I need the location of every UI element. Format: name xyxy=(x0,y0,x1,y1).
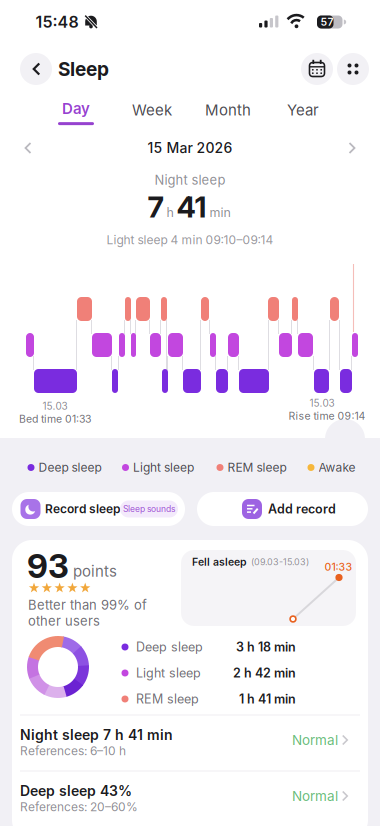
staticText: REM sleep xyxy=(227,461,286,474)
staticText: Record sleep xyxy=(45,502,120,516)
button[interactable]: Record sleep xyxy=(12,492,185,526)
button[interactable]: Deep sleep 43% xyxy=(16,771,364,826)
staticText: 01:33 xyxy=(324,561,352,573)
staticText: Month xyxy=(205,101,251,119)
staticText: 15 Mar 2026 xyxy=(147,140,232,156)
staticText: Rise time 09:14 xyxy=(288,410,365,422)
staticText: Sleep sounds xyxy=(123,504,175,514)
button[interactable]: Calendar xyxy=(301,53,333,85)
staticText: 57 xyxy=(320,16,333,28)
staticText: Light sleep 4 min 09:10–09:14 xyxy=(106,233,273,247)
staticText: 93 xyxy=(27,547,69,585)
staticText: Night sleep xyxy=(154,172,225,187)
button[interactable]: Week xyxy=(132,101,172,119)
staticText: 7 xyxy=(147,190,163,224)
staticText: Awake xyxy=(318,461,355,474)
button[interactable]: Next day xyxy=(338,134,366,162)
staticText: Light sleep xyxy=(136,666,201,680)
staticText: min xyxy=(209,205,230,220)
staticText: Night sleep 7 h 41 min xyxy=(20,727,173,743)
staticText: Normal xyxy=(292,788,338,804)
staticText: 2 h 42 min xyxy=(233,666,296,680)
staticText: 15.03 xyxy=(309,397,334,409)
staticText: 3 h 18 min xyxy=(236,640,296,654)
button[interactable]: Add record xyxy=(197,492,368,526)
staticText: Sleep xyxy=(58,58,109,80)
staticText: h xyxy=(166,205,173,220)
staticText: Day xyxy=(62,100,90,117)
button[interactable]: More xyxy=(337,53,369,85)
staticText: Normal xyxy=(292,732,338,748)
staticText: References: 6–10 h xyxy=(20,744,126,758)
staticText: Light sleep xyxy=(133,461,194,474)
button[interactable]: Night sleep 7 h 41 min xyxy=(16,715,364,771)
staticText: Deep sleep 43% xyxy=(20,783,132,799)
button[interactable]: Previous day xyxy=(14,134,42,162)
staticText: 1 h 41 min xyxy=(239,692,296,706)
staticText: (09.03-15.03) xyxy=(251,557,309,567)
staticText: Fell asleep xyxy=(192,556,247,568)
button[interactable]: Year xyxy=(287,101,319,119)
staticText: Year xyxy=(287,101,319,119)
staticText: 15:48 xyxy=(35,13,78,31)
button[interactable]: Collapse chart xyxy=(325,419,365,459)
button[interactable]: Day xyxy=(58,100,94,125)
staticText: 15.03 xyxy=(42,400,67,412)
button[interactable]: Back xyxy=(20,53,52,85)
button[interactable]: Month xyxy=(205,101,251,119)
staticText: Bed time 01:33 xyxy=(19,413,91,425)
staticText: other users xyxy=(28,613,100,628)
staticText: points xyxy=(73,563,117,580)
staticText: Better than 99% of xyxy=(28,597,147,612)
staticText: Week xyxy=(132,101,172,119)
staticText: REM sleep xyxy=(136,692,199,706)
staticText: 41 xyxy=(176,190,206,224)
staticText: References: 20–60% xyxy=(20,800,138,814)
staticText: Deep sleep xyxy=(136,640,203,654)
staticText: Deep sleep xyxy=(38,461,101,474)
staticText: Add record xyxy=(268,502,336,516)
